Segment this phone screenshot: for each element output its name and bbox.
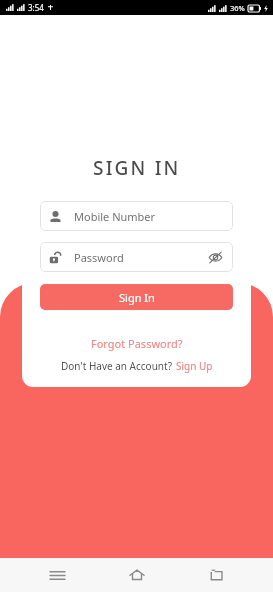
staticText: 36%	[230, 3, 245, 13]
staticText: Mobile Number	[74, 209, 224, 224]
staticText: Don't Have an Account?	[61, 359, 172, 373]
button[interactable]: Home	[114, 558, 160, 592]
button[interactable]: Mobile Number	[40, 201, 233, 231]
staticText: SIGN IN	[93, 155, 181, 181]
staticText: Forgot Password?	[91, 336, 183, 351]
staticText: Sign In	[119, 290, 155, 305]
button[interactable]: Sign In	[40, 284, 233, 310]
button[interactable]: Password	[40, 242, 233, 272]
button[interactable]: Recents	[193, 558, 239, 592]
button[interactable]: Forgot Password?	[87, 334, 187, 353]
staticText: Sign Up	[176, 359, 213, 373]
staticText: Password	[74, 250, 206, 265]
staticText: 3:54	[28, 2, 44, 13]
button[interactable]: Show password	[206, 248, 224, 266]
button[interactable]: Menu	[34, 558, 80, 592]
button[interactable]: Sign Up	[176, 359, 213, 373]
